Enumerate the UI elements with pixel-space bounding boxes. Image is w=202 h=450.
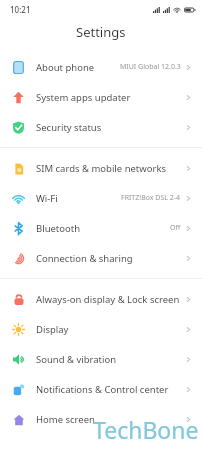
staticText: Off xyxy=(170,223,181,233)
button[interactable]: Wi-Fi xyxy=(0,183,202,213)
button[interactable]: Connection and sharing xyxy=(0,243,202,273)
button[interactable]: System apps updater xyxy=(0,82,202,112)
staticText: Wi-Fi xyxy=(36,192,121,205)
button[interactable]: Bluetooth xyxy=(0,213,202,243)
button[interactable]: Sound and vibration xyxy=(0,344,202,374)
button[interactable]: Notifications xyxy=(0,374,202,404)
button[interactable]: Lock screen xyxy=(0,284,202,314)
staticText: MIUI Global 12.0.3 xyxy=(120,62,181,72)
staticText: Security status xyxy=(36,121,181,134)
button[interactable]: About phone xyxy=(0,52,202,82)
staticText: Connection & sharing xyxy=(36,252,181,265)
staticText: Always-on display & Lock screen xyxy=(36,293,181,306)
button[interactable]: Home screen xyxy=(0,404,202,434)
staticText: FRITZ!Box DSL 2-4 xyxy=(121,193,181,203)
staticText: 10:21 xyxy=(10,4,31,15)
staticText: Settings xyxy=(76,23,126,41)
staticText: Notifications & Control center xyxy=(36,383,181,396)
button[interactable]: Security status xyxy=(0,112,202,142)
staticText: Home screen xyxy=(36,413,181,426)
button[interactable]: Display xyxy=(0,314,202,344)
staticText: Bluetooth xyxy=(36,222,170,235)
staticText: Sound & vibration xyxy=(36,353,181,366)
staticText: SIM cards & mobile networks xyxy=(36,162,181,175)
staticText: Display xyxy=(36,323,181,336)
staticText: System apps updater xyxy=(36,91,181,104)
button[interactable]: SIM cards xyxy=(0,153,202,183)
staticText: TechBone xyxy=(93,414,199,445)
staticText: About phone xyxy=(36,61,120,74)
